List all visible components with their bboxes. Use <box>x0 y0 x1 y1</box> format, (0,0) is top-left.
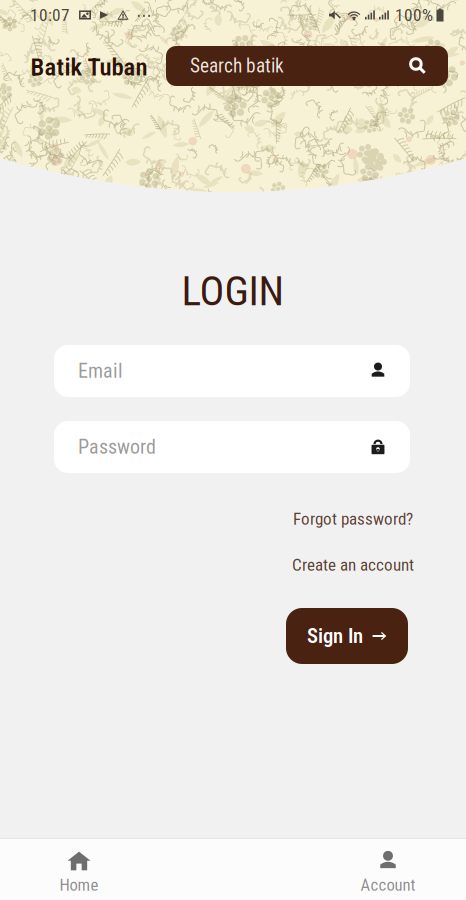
staticText: Password <box>78 435 156 459</box>
staticText: LOGIN <box>181 267 284 315</box>
staticText: Home <box>59 875 98 895</box>
staticText: Sign In <box>307 624 363 648</box>
button[interactable]: Account <box>333 845 443 899</box>
staticText: 10:07 <box>30 5 70 25</box>
button[interactable]: Home <box>24 845 134 899</box>
staticText: Forgot password? <box>293 509 413 529</box>
staticText: ⋯ <box>136 5 152 25</box>
staticText: 100% <box>395 5 433 25</box>
staticText: Search batik <box>190 55 284 77</box>
button[interactable]: Search batik <box>166 46 448 86</box>
button[interactable]: Forgot password? <box>293 509 413 529</box>
staticText: Email <box>78 359 123 383</box>
button[interactable]: Create an account <box>292 555 414 575</box>
staticText: Account <box>360 875 415 895</box>
staticText: Batik Tuban <box>30 52 147 81</box>
button[interactable]: Sign In <box>286 608 408 664</box>
staticText: Create an account <box>292 555 414 575</box>
